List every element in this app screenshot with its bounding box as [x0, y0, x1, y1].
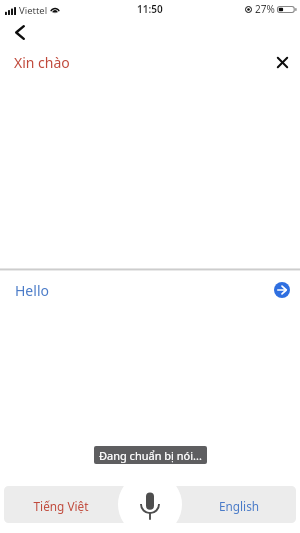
button[interactable]: Tiếng Việt: [4, 486, 152, 523]
button[interactable]: English: [148, 486, 296, 523]
staticText: Xin chào: [14, 53, 70, 72]
staticText: 27%: [255, 2, 275, 16]
button[interactable]: Close: [268, 48, 297, 77]
staticText: 11:50: [137, 2, 163, 16]
staticText: Hello: [15, 281, 49, 300]
button[interactable]: Send: [274, 282, 290, 298]
staticText: Đang chuẩn bị nói...: [99, 448, 202, 463]
staticText: Tiếng Việt: [0, 498, 135, 514]
button[interactable]: Microphone: [118, 473, 182, 533]
staticText: Viettel: [19, 4, 48, 17]
staticText: English: [165, 498, 300, 514]
button[interactable]: Back: [5, 17, 35, 47]
